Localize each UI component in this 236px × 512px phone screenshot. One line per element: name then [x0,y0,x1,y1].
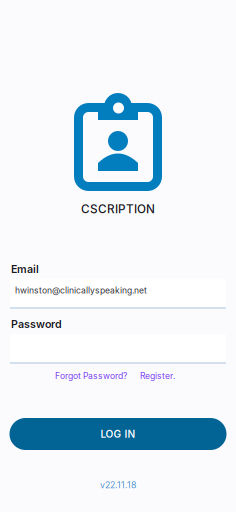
button[interactable]: Forgot Password? [55,371,127,381]
staticText: CSCRIPTION [81,202,155,216]
button[interactable]: Register. [140,371,175,381]
staticText: v22.11.18 [100,480,136,490]
button[interactable]: LOG IN [9,418,226,450]
staticText: LOG IN [100,428,135,440]
staticText: Email [11,262,39,275]
staticText: Register. [140,371,175,381]
staticText: Password [11,317,62,330]
staticText: hwinston@clinicallyspeaking.net [15,285,147,295]
staticText: Forgot Password? [55,371,127,381]
